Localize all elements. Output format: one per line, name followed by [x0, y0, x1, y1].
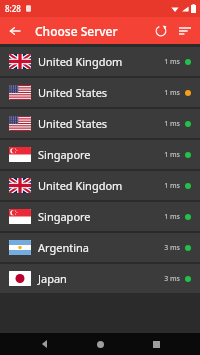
staticText: United Kingdom [38, 54, 123, 69]
button[interactable]: United Kingdom [0, 47, 200, 76]
staticText: United States [38, 116, 108, 131]
button[interactable]: United States [0, 109, 200, 138]
staticText: United Kingdom [38, 178, 123, 193]
staticText: 3 ms [164, 274, 180, 284]
staticText: 3 ms [164, 243, 180, 253]
staticText: 1 ms [164, 119, 180, 129]
staticText: Argentina [38, 240, 90, 255]
staticText: Singapore [38, 147, 91, 162]
button[interactable]: Singapore [0, 202, 200, 231]
button[interactable]: Recents [145, 333, 167, 355]
staticText: Singapore [38, 209, 91, 224]
staticText: Choose Server [35, 23, 118, 39]
staticText: 8:28 [5, 3, 21, 14]
staticText: 1 ms [164, 150, 180, 160]
staticText: United States [38, 85, 108, 100]
button[interactable]: United Kingdom [0, 171, 200, 200]
button[interactable]: Back [6, 22, 24, 40]
button[interactable]: Home [89, 333, 111, 355]
button[interactable]: Singapore [0, 140, 200, 169]
button[interactable]: Sort [175, 21, 195, 41]
staticText: 1 ms [164, 57, 180, 67]
button[interactable]: Refresh [151, 21, 171, 41]
staticText: 1 ms [164, 88, 180, 98]
button[interactable]: Back [34, 333, 56, 355]
staticText: 1 ms [164, 181, 180, 191]
button[interactable]: Japan [0, 264, 200, 293]
staticText: 1 ms [164, 212, 180, 222]
button[interactable]: United States [0, 78, 200, 107]
staticText: Japan [38, 271, 67, 286]
button[interactable]: Argentina [0, 233, 200, 262]
